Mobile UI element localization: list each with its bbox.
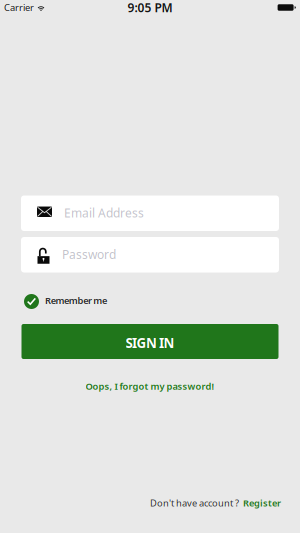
staticText: Register <box>243 497 281 509</box>
staticText: Email Address <box>64 205 144 221</box>
staticText: Password <box>62 246 116 262</box>
button[interactable]: Register <box>243 497 281 509</box>
staticText: SIGN IN <box>125 334 174 352</box>
staticText: 9:05 PM <box>127 0 172 15</box>
staticText: Don't have account ? <box>150 497 239 509</box>
staticText: Oops, I forgot my password! <box>85 380 214 392</box>
staticText: Carrier <box>4 1 34 14</box>
staticText: Remember me <box>45 294 107 307</box>
button[interactable]: Email Address <box>21 195 279 231</box>
button[interactable]: Oops, I forgot my password! <box>85 380 214 392</box>
button[interactable]: SIGN IN <box>21 324 278 359</box>
button[interactable]: Remember me <box>0 294 300 309</box>
button[interactable]: Password <box>21 237 279 272</box>
